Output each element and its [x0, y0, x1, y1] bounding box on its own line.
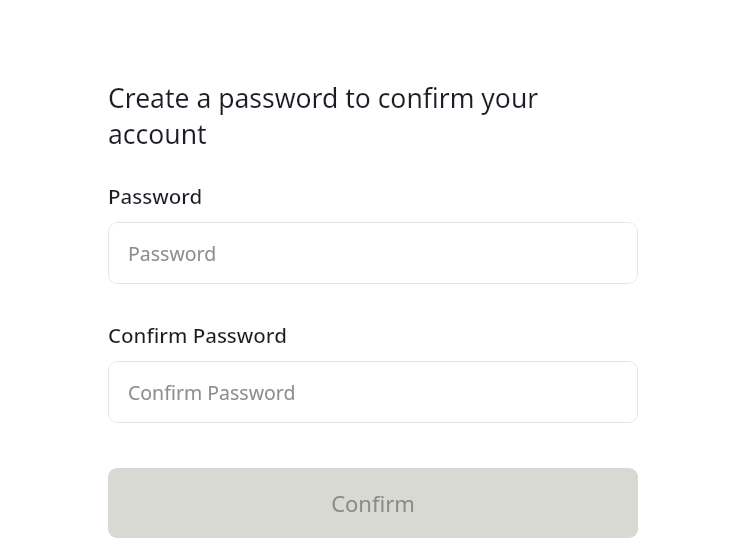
- staticText: Password: [108, 182, 203, 210]
- button[interactable]: Password: [108, 222, 638, 284]
- staticText: Confirm Password: [108, 321, 287, 349]
- staticText: Confirm Password: [128, 379, 296, 406]
- staticText: Password: [128, 240, 217, 267]
- button[interactable]: Confirm: [108, 468, 638, 538]
- button[interactable]: Confirm Password: [108, 361, 638, 423]
- staticText: Create a password to confirm your accoun…: [108, 80, 638, 152]
- staticText: Confirm: [331, 488, 415, 518]
